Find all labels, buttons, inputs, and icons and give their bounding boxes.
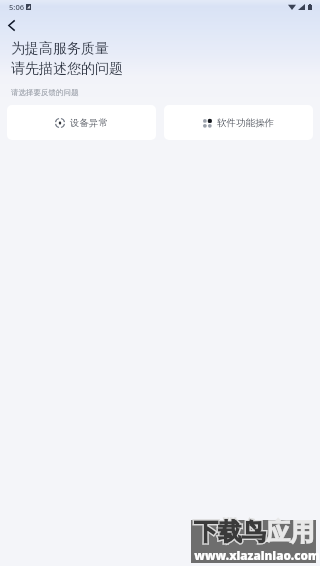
staticText: 请先描述您的问题 <box>11 60 123 78</box>
staticText: 设备异常 <box>70 117 108 129</box>
staticText: 下载鸟 <box>194 517 266 547</box>
staticText: www.xlazalnlao.com <box>194 547 320 563</box>
staticText: 为提高服务质量 <box>11 40 109 58</box>
staticText: 下载鸟 <box>194 517 266 547</box>
button[interactable]: Back <box>0 14 23 37</box>
button[interactable]: 软件功能操作 <box>164 105 313 140</box>
staticText: 应用 <box>266 517 314 547</box>
staticText: 软件功能操作 <box>217 117 274 129</box>
staticText: 5:06 <box>9 2 25 12</box>
staticText: 请选择要反馈的问题 <box>11 88 79 97</box>
button[interactable]: 设备异常 <box>7 105 156 140</box>
